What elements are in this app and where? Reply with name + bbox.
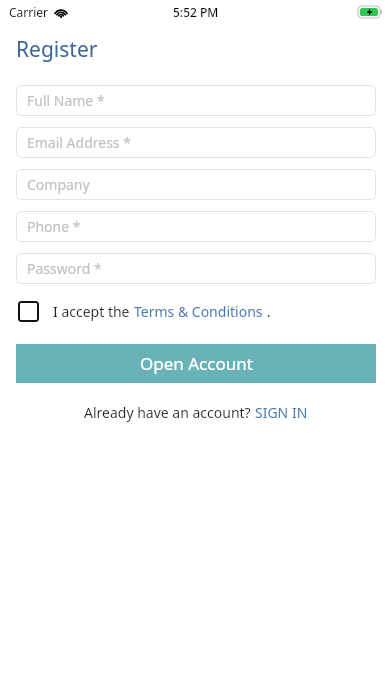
staticText: Password * (27, 259, 102, 278)
staticText: SIGN IN (255, 403, 308, 422)
staticText: Company (27, 175, 90, 194)
staticText: 5:52 PM (173, 4, 219, 20)
staticText: Email Address * (27, 133, 131, 152)
button[interactable]: Terms & Conditions (134, 302, 263, 321)
button[interactable]: Company (16, 169, 376, 200)
staticText: Register (16, 35, 98, 64)
staticText: I accept the (53, 302, 134, 321)
button[interactable]: Accept terms and conditions checkbox (16, 299, 40, 323)
button[interactable]: Full Name * (16, 85, 376, 116)
staticText: Terms & Conditions (134, 302, 263, 321)
button[interactable]: SIGN IN (255, 403, 308, 422)
button[interactable]: Email Address * (16, 127, 376, 158)
staticText: . (263, 302, 271, 321)
staticText: Already have an account? (84, 403, 255, 422)
staticText: Full Name * (27, 91, 105, 110)
button[interactable]: Phone * (16, 211, 376, 242)
staticText: Open Account (140, 352, 253, 375)
staticText: Carrier (9, 4, 49, 20)
button[interactable]: Open Account (16, 344, 376, 383)
button[interactable]: Password * (16, 253, 376, 284)
staticText: Phone * (27, 217, 81, 236)
